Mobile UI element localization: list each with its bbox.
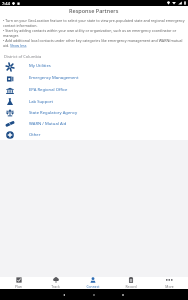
- staticText: EPA Regional Office: [29, 87, 68, 93]
- staticText: Response Partners: [69, 7, 119, 14]
- button[interactable]: Other: [0, 129, 188, 140]
- staticText: Record: [125, 284, 137, 289]
- button[interactable]: Emergency Management: [0, 72, 188, 84]
- button[interactable]: EPA Regional Office: [0, 84, 188, 96]
- other: Back: [62, 293, 66, 297]
- staticText: Track: [51, 284, 60, 289]
- staticText: Connect: [86, 284, 100, 289]
- staticText: More: [165, 284, 174, 289]
- staticText: State Regulatory Agency: [29, 110, 78, 116]
- button[interactable]: WARN / Mutual Aid: [0, 118, 188, 129]
- button[interactable]: My Utilities: [0, 60, 188, 72]
- button[interactable]: Record: [112, 277, 150, 289]
- button[interactable]: • Turn on your GeoLocation feature to se…: [3, 18, 185, 48]
- button[interactable]: State Regulatory Agency: [0, 107, 188, 118]
- button[interactable]: Plan: [0, 277, 37, 289]
- staticText: 7:44: [2, 1, 10, 6]
- button[interactable]: Track: [37, 277, 74, 289]
- staticText: WARN / Mutual Aid: [29, 121, 67, 127]
- staticText: District of Columbia: [4, 54, 42, 59]
- staticText: Other: [29, 132, 41, 138]
- staticText: My Utilities: [29, 63, 51, 69]
- staticText: Lab Support: [29, 99, 54, 105]
- button[interactable]: More: [150, 277, 188, 289]
- button[interactable]: Lab Support: [0, 96, 188, 107]
- staticText: Plan: [15, 284, 22, 289]
- staticText: Emergency Management: [29, 75, 79, 81]
- other: Home: [92, 293, 96, 297]
- other: Recents: [121, 293, 125, 297]
- button[interactable]: Connect: [74, 277, 112, 289]
